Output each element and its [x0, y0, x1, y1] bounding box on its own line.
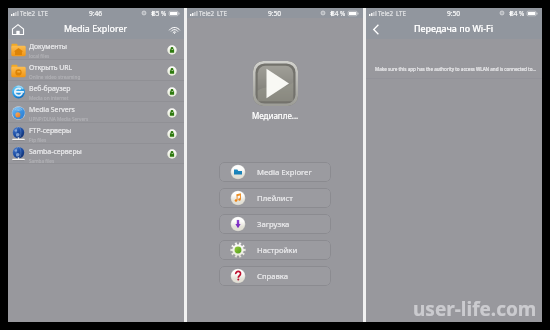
button[interactable]: Медиаплеер	[253, 61, 298, 106]
staticText: Tele2	[199, 9, 215, 17]
staticText: FTP-серверы	[29, 126, 72, 135]
button[interactable]: Back	[368, 21, 384, 37]
staticText: Веб-браузер	[29, 84, 71, 93]
staticText: 9:50	[268, 9, 282, 18]
staticText: Ftp files	[29, 137, 47, 143]
staticText: Samba-серверы	[29, 147, 82, 156]
button[interactable]: Плейлист	[219, 188, 331, 208]
staticText: Media on internet	[29, 95, 69, 101]
staticText: Справка	[257, 271, 289, 281]
staticText: Media Servers	[29, 105, 75, 114]
staticText: Загрузка	[257, 219, 290, 229]
staticText: Настройки	[257, 245, 298, 255]
staticText: Online video streaming	[29, 74, 81, 80]
staticText: LTE	[217, 9, 227, 17]
staticText: Tele2	[20, 9, 36, 17]
staticText: UPNP/DLNA Media Servers	[29, 116, 89, 122]
button[interactable]: Документы	[8, 39, 184, 60]
button[interactable]: Home	[10, 21, 26, 37]
staticText: Передача по Wi-Fi	[414, 22, 494, 34]
staticText: Make sure this app has the authority to …	[375, 66, 537, 72]
button[interactable]: Веб-браузер	[8, 81, 184, 102]
button[interactable]: Открыть URL	[8, 60, 184, 81]
staticText: Samba files	[29, 158, 55, 164]
button[interactable]: Настройки	[219, 240, 331, 260]
button[interactable]: Media Explorer	[219, 162, 331, 182]
button[interactable]: Wi-Fi	[166, 21, 182, 37]
staticText: Медиапле...	[252, 110, 299, 121]
button[interactable]: Загрузка	[219, 214, 331, 234]
staticText: Плейлист	[257, 193, 293, 203]
staticText: Media Explorer	[64, 22, 128, 34]
staticText: 84 %	[510, 9, 525, 18]
staticText: 84 %	[331, 9, 346, 18]
staticText: user-life.com	[413, 296, 537, 322]
staticText: Документы	[29, 42, 68, 51]
staticText: Открыть URL	[29, 63, 73, 72]
staticText: 85 %	[152, 9, 167, 18]
button[interactable]: Samba-серверы	[8, 144, 184, 164]
button[interactable]: Справка	[219, 266, 331, 286]
staticText: local files	[29, 53, 50, 59]
staticText: LTE	[396, 9, 406, 17]
staticText: 9:46	[89, 9, 103, 18]
staticText: Media Explorer	[257, 167, 312, 177]
button[interactable]: Media Servers	[8, 102, 184, 123]
button[interactable]: FTP-серверы	[8, 123, 184, 144]
staticText: Tele2	[378, 9, 394, 17]
staticText: LTE	[38, 9, 48, 17]
staticText: 9:50	[447, 9, 461, 18]
